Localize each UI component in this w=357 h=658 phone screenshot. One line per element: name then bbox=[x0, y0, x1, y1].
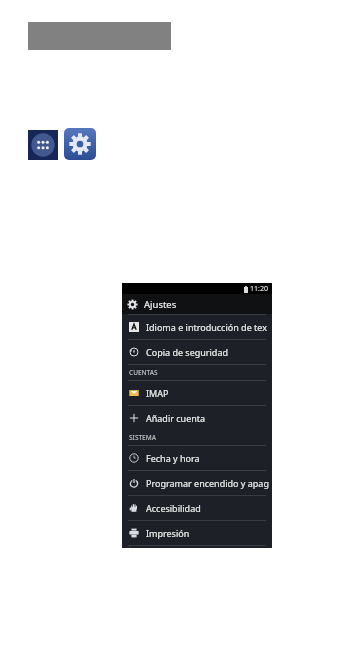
button[interactable]: Fecha y hora bbox=[122, 446, 272, 470]
staticText: 11:20 bbox=[250, 284, 268, 294]
staticText: Copia de seguridad bbox=[146, 346, 228, 358]
button[interactable]: Ajustes bbox=[122, 294, 272, 314]
button[interactable]: Todas las aplicaciones bbox=[28, 130, 58, 160]
staticText: SISTEMA bbox=[129, 433, 156, 442]
button[interactable]: Programar encendido y apag bbox=[122, 471, 272, 495]
staticText: Impresión bbox=[146, 527, 190, 539]
button[interactable]: Ajustes bbox=[64, 128, 96, 160]
staticText: Ajustes bbox=[144, 298, 177, 311]
staticText: Añadir cuenta bbox=[146, 412, 206, 424]
staticText: IMAP bbox=[146, 387, 169, 399]
button[interactable]: IMAP bbox=[122, 381, 272, 405]
button[interactable]: Accesibilidad bbox=[122, 496, 272, 520]
button[interactable]: Impresión bbox=[122, 521, 272, 545]
staticText: Accesibilidad bbox=[146, 502, 201, 514]
staticText: Fecha y hora bbox=[146, 452, 200, 464]
staticText: CUENTAS bbox=[129, 368, 158, 377]
button[interactable]: Añadir cuenta bbox=[122, 406, 272, 430]
staticText: Programar encendido y apag bbox=[146, 477, 269, 489]
staticText: Idioma e introducción de tex bbox=[146, 321, 267, 333]
button[interactable]: Copia de seguridad bbox=[122, 340, 272, 364]
button[interactable]: Idioma e introducción de tex bbox=[122, 315, 272, 339]
